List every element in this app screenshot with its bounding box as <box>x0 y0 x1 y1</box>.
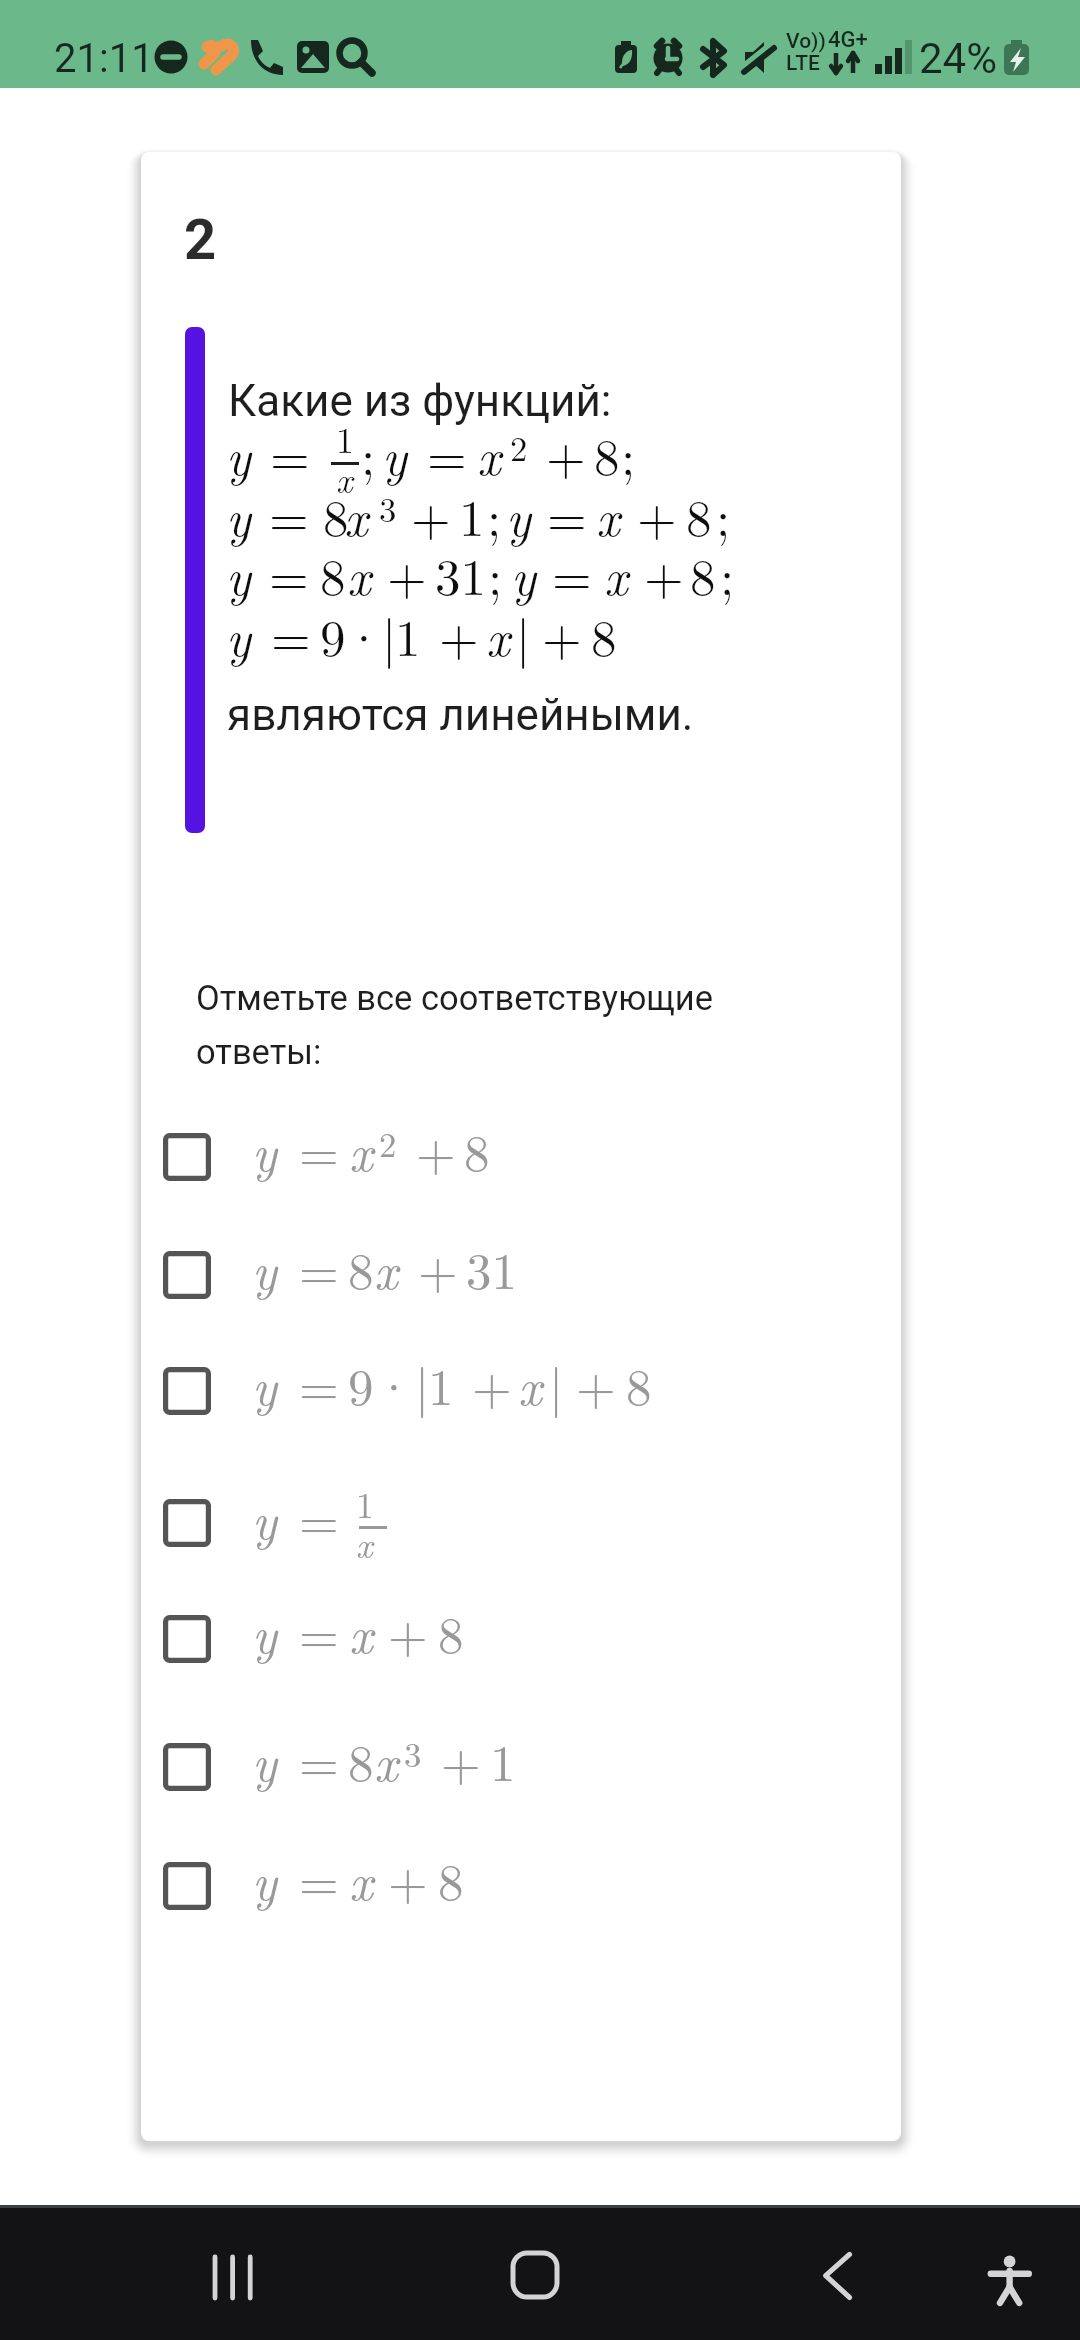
staticText: 31 <box>435 538 487 610</box>
staticText: Vo)) <box>786 29 826 54</box>
staticText: 31 <box>466 1232 518 1304</box>
staticText: 1 <box>428 1348 454 1420</box>
staticText: 2 <box>184 207 217 273</box>
staticText: + <box>576 1348 616 1420</box>
staticText: x <box>349 1596 373 1668</box>
staticText: x <box>477 418 501 490</box>
staticText: 4G+ <box>828 27 868 53</box>
staticText: + <box>472 1348 512 1420</box>
staticText: y <box>226 538 251 610</box>
staticText: + <box>644 538 684 610</box>
staticText: + <box>439 599 479 671</box>
staticText: = <box>427 418 467 490</box>
staticText: 9 <box>320 599 346 671</box>
staticText: 8 <box>348 1232 374 1304</box>
staticText: = <box>271 599 311 671</box>
staticText: 1 <box>490 1724 516 1796</box>
staticText: · <box>344 599 384 671</box>
staticText: 8 <box>594 418 620 490</box>
button[interactable] <box>141 1337 901 1445</box>
staticText: ответы: <box>196 1032 322 1072</box>
staticText: + <box>546 418 586 490</box>
staticText: y <box>226 479 251 551</box>
staticText: 8 <box>591 599 617 671</box>
staticText: + <box>411 479 451 551</box>
staticText: x <box>486 599 510 671</box>
staticText: 8 <box>348 1724 374 1796</box>
staticText: 8 <box>438 1843 464 1915</box>
staticText: y <box>506 479 531 551</box>
staticText: = <box>552 538 592 610</box>
staticText: + <box>388 1596 428 1668</box>
staticText: x <box>374 1232 398 1304</box>
staticText: y <box>252 1114 277 1186</box>
button[interactable] <box>141 1585 901 1693</box>
staticText: + <box>637 479 677 551</box>
button[interactable]: Back <box>790 2207 886 2303</box>
staticText: x <box>347 538 371 610</box>
staticText: x <box>596 479 620 551</box>
staticText: y <box>252 1596 277 1668</box>
staticText: 24% <box>919 34 997 83</box>
staticText: LTE <box>786 51 820 76</box>
staticText: + <box>542 599 582 671</box>
staticText: y <box>226 599 251 671</box>
staticText: 8 <box>626 1348 652 1420</box>
staticText: y <box>252 1724 277 1796</box>
staticText: x <box>344 479 368 551</box>
staticText: 1 <box>336 413 354 464</box>
staticText: = <box>299 1348 339 1420</box>
staticText: x <box>374 1724 398 1796</box>
staticText: 8 <box>686 479 712 551</box>
staticText: ; <box>621 418 636 490</box>
staticText: 3 <box>404 1728 422 1777</box>
staticText: | <box>549 1348 564 1420</box>
staticText: + <box>441 1724 481 1796</box>
staticText: + <box>387 538 427 610</box>
staticText: x <box>604 538 628 610</box>
staticText: 8 <box>438 1596 464 1668</box>
staticText: ; <box>361 418 376 490</box>
staticText: 2 <box>510 422 528 471</box>
button[interactable] <box>141 1103 901 1211</box>
staticText: = <box>299 1232 339 1304</box>
staticText: x <box>349 1843 373 1915</box>
staticText: ; <box>488 538 503 610</box>
staticText: = <box>547 479 587 551</box>
staticText: ; <box>720 538 735 610</box>
staticText: 8 <box>464 1114 490 1186</box>
staticText: 1 <box>356 1478 374 1529</box>
staticText: 2 <box>379 1118 397 1167</box>
staticText: y <box>252 1348 277 1420</box>
button[interactable]: Accessibility <box>962 2207 1058 2303</box>
staticText: | <box>382 599 397 671</box>
staticText: ; <box>487 479 502 551</box>
staticText: x <box>356 1518 373 1569</box>
button[interactable]: Recent apps <box>183 2207 281 2305</box>
staticText: 8 <box>323 479 349 551</box>
staticText: + <box>388 1843 428 1915</box>
staticText: y <box>226 418 251 490</box>
staticText: 8 <box>320 538 346 610</box>
staticText: = <box>269 538 309 610</box>
button[interactable] <box>141 1832 901 1940</box>
button[interactable] <box>141 1469 901 1577</box>
staticText: 21:11 <box>54 35 154 82</box>
staticText: x <box>518 1348 542 1420</box>
staticText: = <box>270 418 310 490</box>
button[interactable] <box>141 1221 901 1329</box>
staticText: + <box>416 1114 456 1186</box>
staticText: 1 <box>395 599 421 671</box>
staticText: | <box>415 1348 430 1420</box>
staticText: y <box>511 538 536 610</box>
staticText: Отметьте все соответствующие <box>196 978 714 1018</box>
staticText: | <box>516 599 531 671</box>
staticText: · <box>374 1348 414 1420</box>
button[interactable]: Home <box>488 2207 584 2303</box>
staticText: = <box>269 479 309 551</box>
staticText: 1 <box>459 479 485 551</box>
staticText: y <box>252 1482 277 1554</box>
staticText: = <box>299 1724 339 1796</box>
staticText: ; <box>716 479 731 551</box>
button[interactable] <box>141 1713 901 1821</box>
